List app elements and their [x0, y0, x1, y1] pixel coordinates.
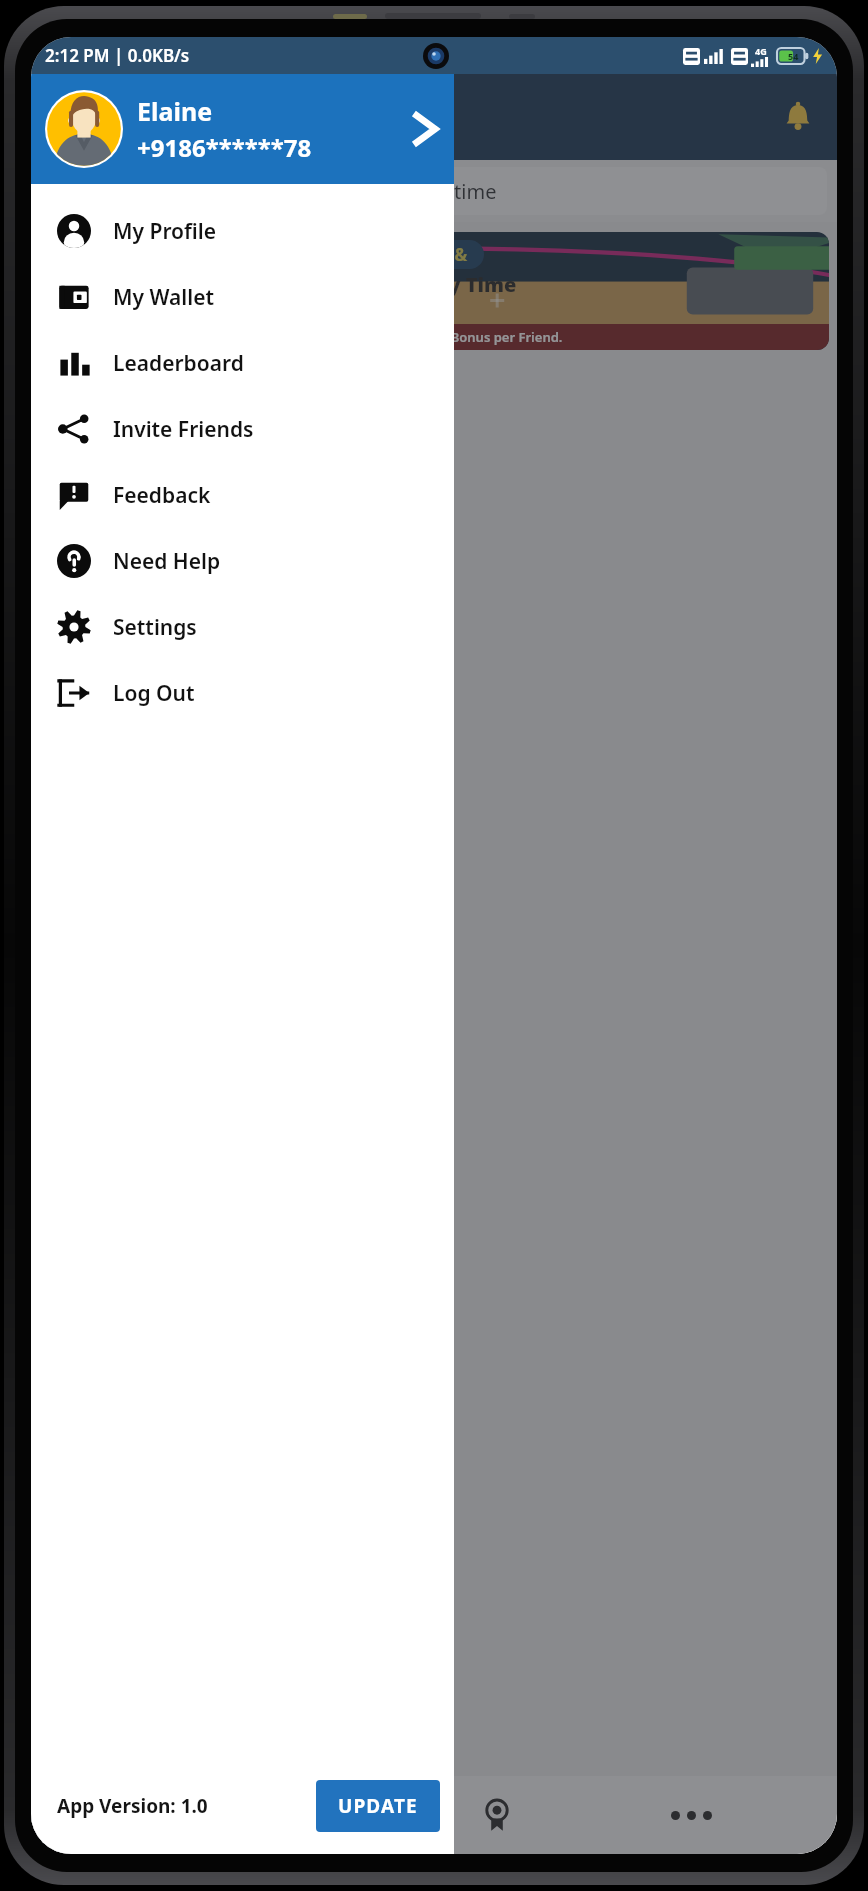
button[interactable]: More [594, 1776, 788, 1854]
other: Open profile [404, 108, 446, 150]
button[interactable]: UPDATE [316, 1780, 440, 1832]
staticText: App Version: 1.0 [57, 1793, 208, 1819]
button[interactable]: Settings [31, 594, 454, 660]
staticText: Guaranteed ₹100 Cash Bonus per Friend. [305, 328, 563, 346]
staticText: Elaine [137, 94, 213, 128]
staticText: 54 [788, 50, 799, 62]
staticText: My Profile [113, 217, 217, 246]
button[interactable]: Leaderboard [31, 330, 454, 396]
staticText: Winn [37, 98, 113, 136]
button[interactable]: Rewards [400, 1776, 594, 1854]
button[interactable]: Invite Friends [31, 396, 454, 462]
button[interactable]: Invite & [39, 232, 829, 350]
staticText: Need Help [113, 547, 221, 576]
staticText: Quiz Anytime [371, 178, 497, 205]
button[interactable]: Elaine [31, 74, 454, 184]
button[interactable]: Feedback [31, 462, 454, 528]
staticText: 2:12 PM | 0.0KB/s [45, 44, 190, 67]
staticText: UPDATE [338, 1793, 418, 1819]
button[interactable]: My Profile [31, 198, 454, 264]
staticText: Earn Every Time [352, 271, 517, 298]
staticText: +9186******78 [137, 131, 312, 164]
staticText: Invite & [400, 243, 468, 266]
button[interactable]: Notifications [781, 100, 815, 134]
staticText: Feedback [113, 481, 211, 510]
staticText: Invite Friends [113, 415, 254, 444]
staticText: 4G [755, 45, 767, 57]
staticText: My Wallet [113, 283, 215, 312]
button[interactable]: Quiz Anytime [41, 167, 827, 215]
staticText: Leaderboard [113, 349, 244, 378]
button[interactable]: My Wallet [31, 264, 454, 330]
staticText: Log Out [113, 679, 195, 708]
staticText: Settings [113, 613, 197, 642]
button[interactable]: Log Out [31, 660, 454, 726]
button[interactable]: Need Help [31, 528, 454, 594]
